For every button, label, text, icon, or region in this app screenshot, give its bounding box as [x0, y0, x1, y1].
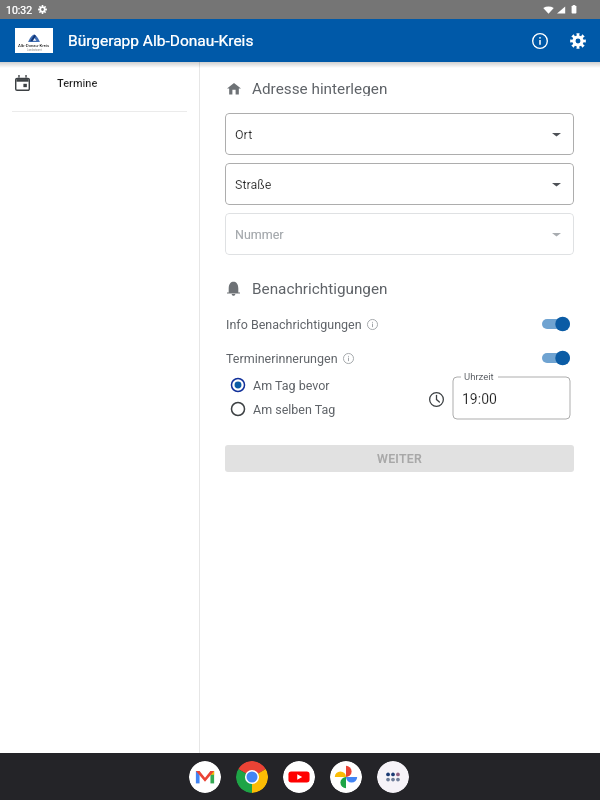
button[interactable]: Info: [521, 22, 559, 60]
button[interactable]: Am Tag bevor: [230, 376, 330, 394]
staticText: 19:00: [462, 391, 497, 407]
button[interactable]: Einstellungen: [559, 22, 597, 60]
button[interactable]: Gmail: [189, 761, 221, 793]
button[interactable]: Alle Apps: [377, 761, 409, 793]
staticText: Ort: [235, 127, 253, 142]
staticText: Am Tag bevor: [253, 378, 330, 393]
staticText: Benachrichtigungen: [252, 280, 388, 297]
staticText: 10:32: [6, 4, 33, 16]
button[interactable]: Terminerinnerungen: [226, 348, 570, 368]
button[interactable]: Ort: [225, 113, 574, 155]
staticText: Straße: [235, 177, 272, 192]
staticText: Bürgerapp Alb-Donau-Kreis: [68, 32, 254, 50]
staticText: Terminerinnerungen: [226, 351, 338, 366]
button[interactable]: Uhrzeit: [453, 370, 570, 419]
button[interactable]: YouTube: [283, 761, 315, 793]
button[interactable]: Am selben Tag: [230, 400, 336, 418]
button[interactable]: Google Fotos: [330, 761, 362, 793]
staticText: Landratsamt: [27, 49, 42, 52]
staticText: Termine: [57, 77, 98, 90]
staticText: Am selben Tag: [253, 402, 336, 417]
staticText: Uhrzeit: [464, 371, 494, 382]
staticText: Alb-Donau-Kreis: [18, 43, 50, 48]
staticText: WEITER: [377, 452, 423, 466]
staticText: Adresse hinterlegen: [252, 80, 388, 96]
button[interactable]: Chrome: [236, 761, 268, 793]
button[interactable]: Info Benachrichtigungen: [226, 314, 570, 334]
button[interactable]: WEITER: [225, 445, 574, 472]
button[interactable]: Termine: [0, 62, 199, 111]
staticText: Nummer: [235, 227, 284, 242]
button[interactable]: Straße: [225, 163, 574, 205]
staticText: Info Benachrichtigungen: [226, 317, 362, 332]
button[interactable]: Nummer: [225, 213, 574, 255]
